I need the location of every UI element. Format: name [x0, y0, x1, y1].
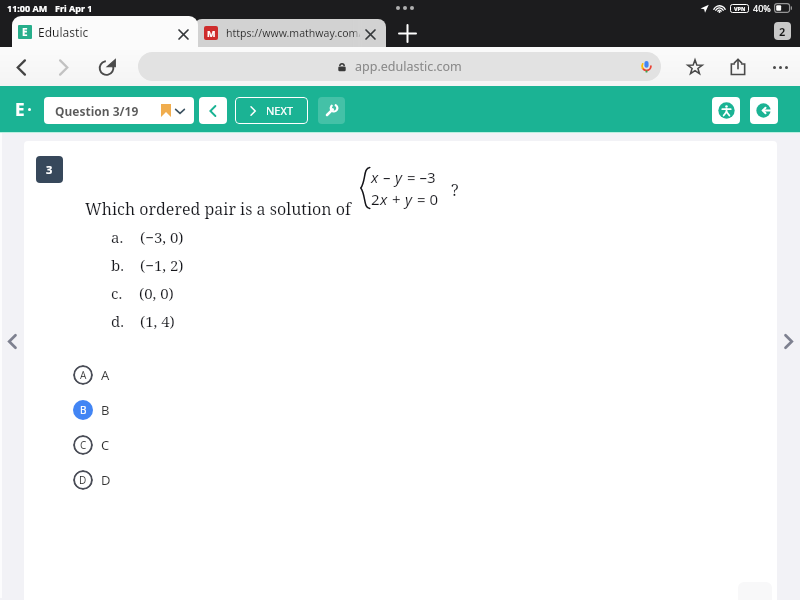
staticText: y — [395, 167, 403, 187]
staticText: c. — [111, 283, 123, 303]
button[interactable]: B — [73, 397, 110, 423]
button[interactable]: app.edulastic.com — [138, 52, 661, 81]
button[interactable]: Bookmark — [681, 53, 709, 81]
button[interactable]: Tab count — [774, 22, 791, 40]
button[interactable]: Exit — [750, 97, 778, 124]
button[interactable]: Accessibility — [712, 97, 740, 124]
staticText: a. — [111, 227, 124, 247]
staticText: app.edulastic.com — [355, 58, 462, 75]
button[interactable]: Reload — [93, 53, 121, 81]
staticText: x — [380, 189, 388, 209]
staticText: (−1, 2) — [140, 255, 184, 275]
staticText: b. — [111, 255, 124, 275]
staticText: d. — [111, 311, 124, 331]
staticText: 3 — [46, 162, 53, 177]
button[interactable]: Share — [724, 53, 752, 81]
button[interactable]: A — [73, 362, 110, 388]
button[interactable]: C — [73, 432, 110, 458]
staticText: Fri Apr 1 — [55, 2, 93, 14]
button[interactable]: D — [73, 467, 111, 493]
button[interactable]: Question 3/19 — [44, 97, 194, 124]
staticText: 2 — [779, 24, 786, 39]
button[interactable]: Previous question — [199, 97, 227, 124]
staticText: E — [15, 98, 25, 121]
staticText: NEXT — [266, 103, 294, 118]
button[interactable]: Forward — [49, 53, 77, 81]
button[interactable]: Close Edulastic tab — [173, 24, 193, 44]
staticText: C — [101, 436, 110, 454]
button[interactable]: More options — [766, 53, 794, 81]
staticText: E — [22, 25, 28, 39]
button[interactable]: New tab — [397, 23, 417, 43]
staticText: (−3, 0) — [140, 227, 184, 247]
staticText: Question 3/19 — [55, 103, 139, 119]
staticText: 40% — [753, 2, 771, 14]
button[interactable]: Close tab — [360, 24, 380, 44]
button[interactable]: NEXT — [235, 97, 308, 124]
staticText: + — [388, 189, 405, 209]
staticText: ? — [451, 179, 459, 201]
staticText: D — [79, 473, 87, 487]
button[interactable]: Next — [776, 133, 800, 598]
button[interactable]: Tools — [318, 97, 345, 124]
staticText: 2 — [371, 189, 380, 209]
staticText: Edulastic — [38, 24, 89, 40]
staticText: D — [101, 471, 111, 489]
staticText: A — [101, 366, 110, 384]
staticText: Which ordered pair is a solution of — [85, 198, 351, 220]
button[interactable]: E — [12, 16, 198, 47]
staticText: M — [207, 27, 216, 39]
staticText: y — [405, 189, 413, 209]
button[interactable]: Back — [7, 53, 35, 81]
staticText: x — [371, 167, 379, 187]
staticText: https://www.mathway.com/ — [226, 26, 360, 40]
staticText: C — [80, 438, 87, 452]
staticText: = –3 — [403, 167, 436, 187]
staticText: – — [379, 167, 395, 187]
button[interactable]: Previous — [0, 133, 24, 598]
staticText: (1, 4) — [140, 311, 175, 331]
staticText: A — [80, 368, 87, 382]
staticText: (0, 0) — [139, 283, 174, 303]
staticText: = 0 — [413, 189, 438, 209]
staticText: 11:00 AM — [7, 2, 48, 14]
staticText: B — [80, 403, 87, 417]
staticText: B — [101, 401, 110, 419]
button[interactable]: M — [194, 19, 386, 47]
staticText: VPN — [734, 5, 746, 12]
